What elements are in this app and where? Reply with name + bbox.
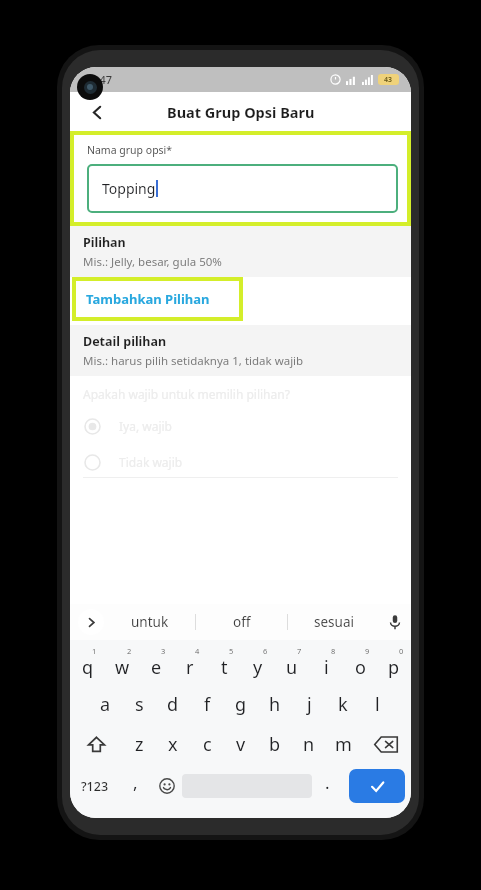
button[interactable]: x xyxy=(156,724,190,764)
button[interactable]: Back xyxy=(82,97,112,127)
button[interactable]: n xyxy=(292,724,326,764)
staticText: Tambahkan Pilihan xyxy=(86,290,210,308)
staticText: u xyxy=(286,655,298,680)
staticText: untuk xyxy=(131,613,169,631)
staticText: y xyxy=(253,655,263,680)
staticText: sesuai xyxy=(314,613,354,631)
button[interactable]: Tidak wajib xyxy=(70,451,411,473)
button[interactable]: , xyxy=(120,764,151,808)
button[interactable]: Detail pilihan xyxy=(70,325,411,376)
button[interactable]: untuk xyxy=(104,604,195,640)
staticText: Iya, wajib xyxy=(119,418,172,434)
staticText: v xyxy=(236,732,246,757)
staticText: Pilihan xyxy=(83,234,126,251)
button[interactable]: More suggestions xyxy=(78,609,104,635)
button[interactable]: k xyxy=(326,684,360,724)
staticText: Mis.: Jelly, besar, gula 50% xyxy=(83,254,222,270)
staticText: p xyxy=(388,655,400,680)
staticText: k xyxy=(338,692,348,717)
button[interactable]: . xyxy=(312,764,343,808)
button[interactable]: Voice input xyxy=(379,604,411,640)
staticText: i xyxy=(324,655,329,680)
button[interactable]: c xyxy=(190,724,224,764)
button[interactable]: Pilihan xyxy=(70,226,411,277)
button[interactable]: 0 xyxy=(377,644,411,684)
staticText: z xyxy=(135,732,144,757)
button[interactable]: b xyxy=(258,724,292,764)
staticText: Mis.: harus pilih setidaknya 1, tidak wa… xyxy=(83,353,304,369)
button[interactable]: Backspace xyxy=(360,724,411,764)
button[interactable]: j xyxy=(292,684,326,724)
staticText: o xyxy=(355,655,366,680)
button[interactable]: d xyxy=(156,684,190,724)
button[interactable]: 4 xyxy=(173,644,207,684)
staticText: . xyxy=(325,771,330,794)
staticText: 4 xyxy=(195,646,200,656)
button[interactable]: Iya, wajib xyxy=(70,415,411,437)
staticText: n xyxy=(303,732,315,757)
staticText: s xyxy=(135,692,144,717)
staticText: q xyxy=(82,655,94,680)
staticText: 7 xyxy=(297,646,302,656)
staticText: 1 xyxy=(92,646,97,656)
button[interactable]: m xyxy=(326,724,360,764)
staticText: r xyxy=(186,655,194,680)
staticText: h xyxy=(269,692,281,717)
staticText: e xyxy=(151,655,162,680)
button[interactable]: ?123 xyxy=(70,764,120,808)
staticText: m xyxy=(335,732,352,757)
button[interactable]: 7 xyxy=(275,644,309,684)
button[interactable]: 1 xyxy=(70,644,105,684)
button[interactable]: l xyxy=(360,684,394,724)
staticText: g xyxy=(235,692,247,717)
button[interactable]: 6 xyxy=(241,644,275,684)
staticText: d xyxy=(167,692,179,717)
button[interactable]: off xyxy=(196,604,287,640)
staticText: ?123 xyxy=(81,778,109,795)
staticText: 2 xyxy=(127,646,132,656)
staticText: 6 xyxy=(263,646,268,656)
staticText: c xyxy=(203,732,212,757)
button[interactable]: Emoji xyxy=(151,764,182,808)
button[interactable]: f xyxy=(190,684,224,724)
button[interactable]: Topping xyxy=(87,164,398,213)
staticText: Tidak wajib xyxy=(119,454,183,470)
staticText: Buat Grup Opsi Baru xyxy=(167,102,315,122)
button[interactable]: 5 xyxy=(207,644,241,684)
staticText: 0 xyxy=(399,646,404,656)
button[interactable]: Enter xyxy=(349,769,405,803)
staticText: 8 xyxy=(331,646,336,656)
staticText: x xyxy=(168,732,178,757)
button[interactable]: h xyxy=(258,684,292,724)
staticText: Detail pilihan xyxy=(83,333,167,350)
button[interactable]: g xyxy=(224,684,258,724)
staticText: a xyxy=(100,692,111,717)
button[interactable]: v xyxy=(224,724,258,764)
button[interactable]: a xyxy=(88,684,122,724)
staticText: j xyxy=(307,692,312,717)
staticText: 43 xyxy=(384,75,393,85)
staticText: , xyxy=(133,771,138,794)
button[interactable]: z xyxy=(122,724,156,764)
staticText: Nama grup opsi* xyxy=(87,143,173,157)
staticText: f xyxy=(204,692,211,717)
staticText: 3 xyxy=(161,646,166,656)
button[interactable]: 9 xyxy=(343,644,377,684)
staticText: w xyxy=(115,655,130,680)
button[interactable]: Shift xyxy=(70,724,122,764)
staticText: Topping xyxy=(102,179,156,198)
button[interactable]: s xyxy=(122,684,156,724)
staticText: 10.47 xyxy=(84,72,113,87)
staticText: off xyxy=(233,613,251,631)
staticText: 5 xyxy=(229,646,234,656)
button[interactable]: sesuai xyxy=(288,604,379,640)
staticText: Apakah wajib untuk memilih pilihan? xyxy=(83,386,290,402)
button[interactable]: 2 xyxy=(105,644,139,684)
button[interactable]: 8 xyxy=(309,644,343,684)
button[interactable]: 3 xyxy=(139,644,173,684)
staticText: b xyxy=(269,732,281,757)
staticText: t xyxy=(221,655,228,680)
staticText: 9 xyxy=(365,646,370,656)
button[interactable]: Tambahkan Pilihan xyxy=(76,281,239,317)
